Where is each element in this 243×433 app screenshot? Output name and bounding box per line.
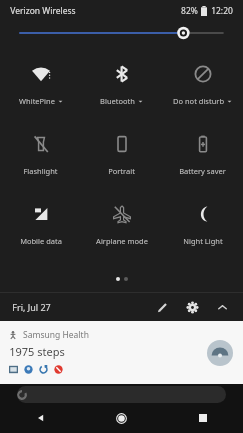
staticText: Portrait <box>108 166 135 176</box>
button[interactable]: Do not disturb <box>162 50 243 120</box>
staticText: Flashlight <box>23 166 58 176</box>
button[interactable]: Cloud <box>24 365 33 374</box>
staticText: Verizon Wireless <box>10 5 76 17</box>
button[interactable]: Battery saver <box>162 120 243 190</box>
staticText: 82% <box>181 5 198 17</box>
button[interactable]: Edit <box>149 294 175 320</box>
button[interactable]: Flashlight <box>0 120 81 190</box>
button[interactable]: Collapse <box>209 294 235 320</box>
button[interactable]: Brightness <box>0 22 243 44</box>
staticText: Night Light <box>183 236 223 246</box>
button[interactable]: Sync <box>39 365 48 374</box>
button[interactable]: Airplane mode <box>81 190 162 260</box>
staticText: Battery saver <box>179 166 226 176</box>
button[interactable]: Settings <box>179 294 205 320</box>
button[interactable]: Recents <box>162 403 243 433</box>
staticText: Samsung Health <box>23 329 89 341</box>
button[interactable]: Screenshot <box>9 365 18 374</box>
staticText: Mobile data <box>20 236 62 246</box>
staticText: 12:20 <box>211 5 233 17</box>
staticText: Do not disturb <box>173 96 224 106</box>
staticText: Bluetooth <box>100 96 135 106</box>
staticText: Fri, Jul 27 <box>12 301 51 313</box>
button[interactable]: WhitePine <box>0 50 81 120</box>
button[interactable]: Bluetooth <box>81 50 162 120</box>
staticText: Airplane mode <box>96 236 148 246</box>
button[interactable]: Blocked <box>54 365 63 374</box>
staticText: WhitePine <box>19 96 55 106</box>
button[interactable]: Samsung Health <box>0 321 243 384</box>
button[interactable]: Portrait <box>81 120 162 190</box>
staticText: 1975 steps <box>9 344 65 359</box>
button[interactable]: Home <box>81 403 162 433</box>
button[interactable]: Night Light <box>162 190 243 260</box>
button[interactable]: Mobile data <box>0 190 81 260</box>
button[interactable]: Back <box>0 403 81 433</box>
